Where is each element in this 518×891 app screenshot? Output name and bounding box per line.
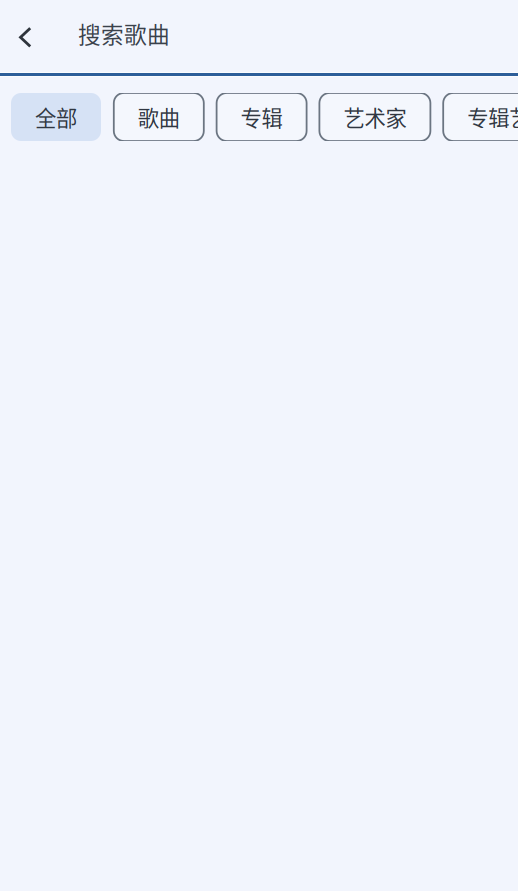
button[interactable]: 专辑艺术家: [443, 93, 518, 141]
staticText: 专辑: [241, 102, 283, 132]
staticText: 搜索歌曲: [78, 17, 170, 50]
button[interactable]: 艺术家: [319, 93, 430, 141]
button[interactable]: 全部: [11, 93, 101, 141]
button[interactable]: 专辑: [217, 93, 307, 141]
staticText: 歌曲: [138, 102, 180, 132]
staticText: 全部: [35, 102, 77, 132]
staticText: 艺术家: [343, 102, 406, 132]
staticText: 专辑艺术家: [467, 102, 518, 132]
button[interactable]: 歌曲: [114, 93, 204, 141]
button[interactable]: Back: [8, 17, 42, 57]
